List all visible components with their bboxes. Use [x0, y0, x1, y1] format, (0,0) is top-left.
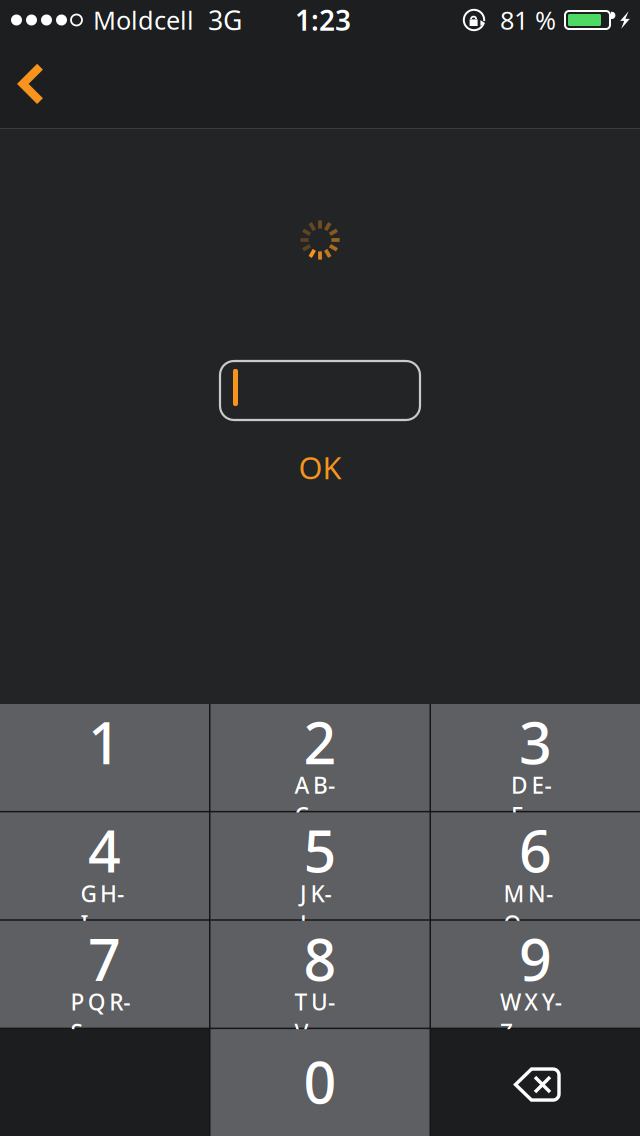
staticText: 7 [88, 921, 121, 997]
staticText: 5 [303, 812, 336, 888]
button[interactable]: Delete [431, 1029, 640, 1136]
staticText: GHI [81, 878, 128, 908]
button[interactable]: OK [276, 420, 363, 498]
button[interactable]: 6 [431, 812, 640, 919]
button[interactable]: 2 [210, 704, 429, 811]
staticText: DEF [511, 770, 560, 800]
staticText: 9 [519, 921, 552, 997]
button[interactable]: 1 [0, 704, 209, 811]
staticText: 0 [303, 1043, 336, 1120]
button[interactable]: 5 [210, 812, 429, 919]
staticText: PQRS [70, 987, 139, 1017]
staticText: 3 [519, 704, 552, 780]
staticText: 4 [88, 812, 121, 888]
staticText: Moldcell [93, 3, 194, 37]
button[interactable]: 8 [210, 921, 429, 1028]
button[interactable]: 7 [0, 921, 209, 1028]
button[interactable]: 3 [431, 704, 640, 811]
button[interactable]: Back [0, 40, 70, 127]
staticText: ABC [295, 770, 345, 800]
staticText: TUV [295, 987, 345, 1017]
staticText: 1 [88, 704, 121, 780]
staticText: 3G [208, 2, 242, 38]
staticText: OK [298, 447, 341, 488]
staticText: 1:23 [295, 1, 351, 39]
staticText: 8 [303, 921, 336, 997]
button[interactable]: 9 [431, 921, 640, 1028]
button[interactable]: 4 [0, 812, 209, 919]
staticText: JKL [300, 878, 340, 908]
staticText: WXYZ [500, 987, 571, 1017]
staticText: MNO [504, 878, 567, 908]
staticText: 81 % [500, 3, 556, 37]
button[interactable]: 0 [210, 1029, 429, 1136]
staticText: 2 [303, 704, 336, 780]
staticText: 6 [519, 812, 552, 888]
